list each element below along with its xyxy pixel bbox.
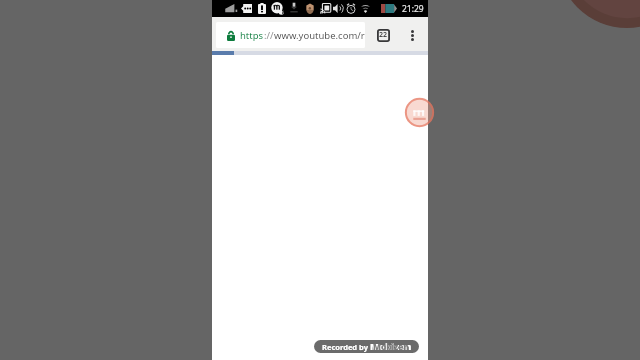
button[interactable]: More options (401, 23, 423, 47)
staticText: https (240, 29, 264, 42)
staticText: Mobizen (370, 340, 412, 353)
staticText: :// (264, 29, 274, 42)
staticText: 22 (379, 30, 388, 40)
staticText: Recorded by (322, 342, 370, 352)
staticText: 21:29 (402, 3, 424, 15)
staticText: www.youtube.com/r (274, 29, 365, 42)
staticText: Mobizen (373, 341, 409, 352)
button[interactable]: https (216, 22, 365, 48)
button[interactable]: Tabs (370, 23, 396, 47)
